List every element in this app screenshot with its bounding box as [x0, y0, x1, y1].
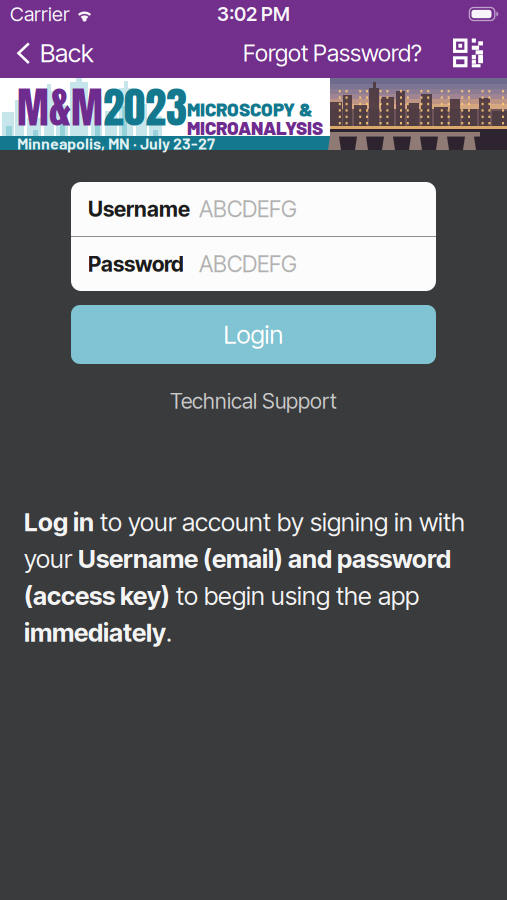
staticText: Login — [223, 319, 283, 350]
staticText: 3:02 PM — [217, 2, 290, 26]
staticText: Forgot Password? — [243, 39, 422, 67]
staticText: 2023 — [103, 75, 187, 140]
staticText: Username — [88, 196, 190, 222]
staticText: Back — [40, 38, 94, 68]
staticText: Password — [88, 251, 184, 277]
staticText: Minneapolis, MN · July 23-27 — [17, 133, 215, 153]
button[interactable]: Forgot Password? — [238, 28, 427, 78]
button[interactable]: Technical Support — [0, 388, 507, 414]
staticText: M&M — [17, 75, 103, 140]
staticText: Carrier — [10, 2, 70, 26]
button[interactable]: Password — [71, 237, 436, 291]
staticText: MICROSCOPY & — [187, 98, 313, 120]
staticText: MICROANALYSIS — [187, 116, 323, 139]
staticText: ABCDEFG — [199, 250, 297, 278]
button[interactable]: Back — [0, 28, 104, 78]
button[interactable]: Scan QR code — [427, 28, 507, 78]
staticText: Technical Support — [170, 388, 337, 414]
staticText: Log in to your account by signing in wit… — [24, 507, 465, 647]
staticText: ABCDEFG — [199, 195, 297, 223]
button[interactable]: Username — [71, 182, 436, 236]
button[interactable]: Login — [71, 305, 436, 364]
